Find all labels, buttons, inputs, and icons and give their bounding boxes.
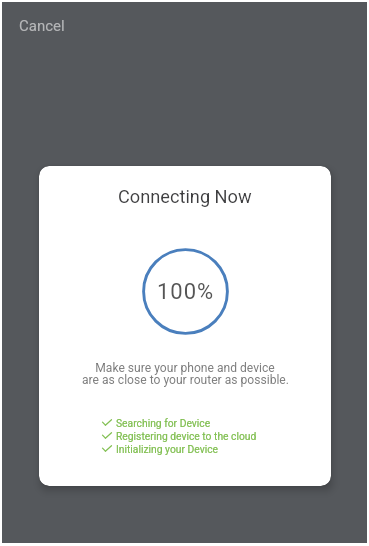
staticText: Searching for Device	[116, 417, 211, 429]
staticText: Make sure your phone and device	[95, 361, 275, 375]
staticText: are as close to your router as possible.	[82, 373, 289, 387]
button[interactable]: Cancel	[12, 11, 72, 41]
staticText: Initializing your Device	[116, 443, 218, 455]
staticText: Registering device to the cloud	[116, 430, 257, 442]
staticText: Cancel	[19, 17, 65, 35]
staticText: 100%	[157, 279, 215, 305]
staticText: Connecting Now	[118, 186, 252, 207]
